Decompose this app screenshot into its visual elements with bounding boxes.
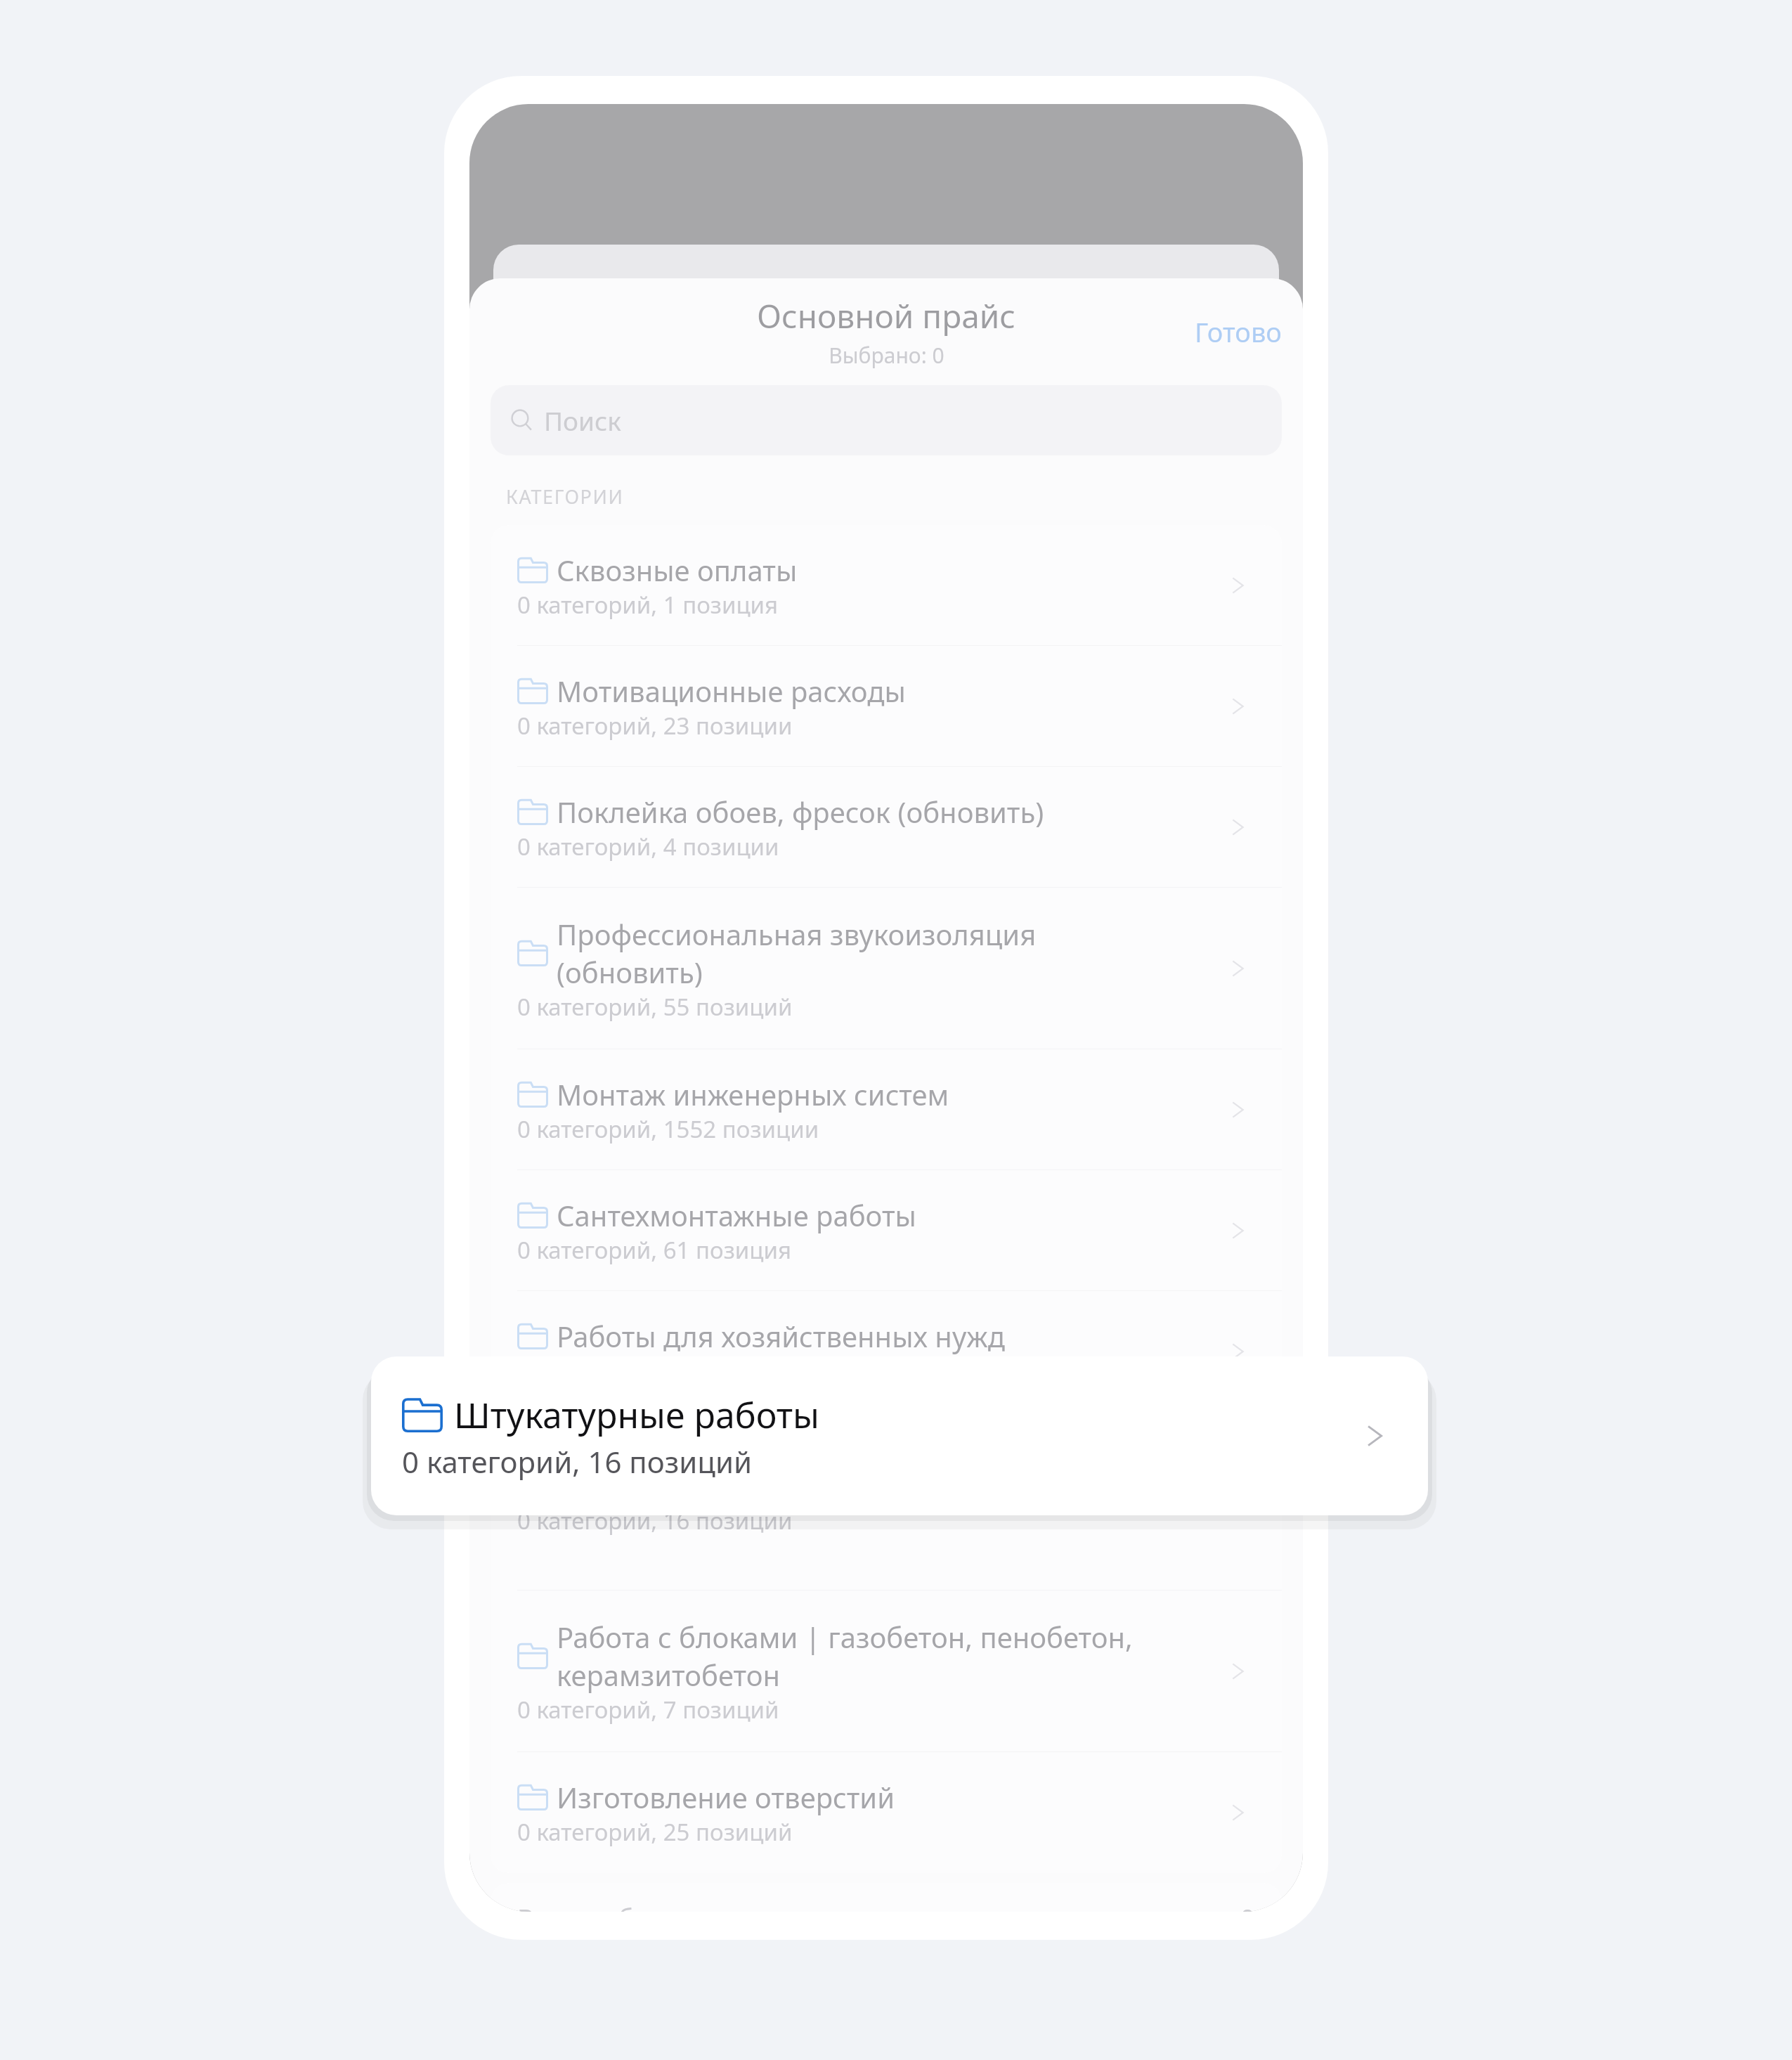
- button[interactable]: Мотивационные расходы: [491, 646, 1282, 767]
- staticText: 0 категорий, 7 позиций: [517, 1694, 779, 1725]
- button[interactable]: Search: [491, 385, 1282, 455]
- staticText: Работа с блоками | газобетон, пенобетон,: [557, 1618, 1133, 1656]
- button[interactable]: Готово: [1186, 306, 1290, 357]
- staticText: Монтаж инженерных систем: [557, 1075, 949, 1113]
- staticText: Профессиональная звукоизоляция: [557, 915, 1037, 953]
- staticText: Изготовление отверстий: [557, 1778, 895, 1816]
- staticText: Основной прайс: [757, 294, 1015, 338]
- button[interactable]: Штукатурные работы: [491, 1412, 1282, 1591]
- staticText: 0 категорий, 23 позиции: [517, 710, 793, 741]
- staticText: 0 категорий, 16 позиций: [402, 1442, 753, 1482]
- button[interactable]: Работа с блоками | газобетон, пенобетон,: [491, 1591, 1282, 1752]
- staticText: 0 категорий, 55 позиций: [517, 991, 793, 1023]
- staticText: 0: [1240, 1901, 1255, 1912]
- staticText: Поиск: [544, 403, 621, 438]
- staticText: 0 категорий, 1552 позиции: [517, 1113, 819, 1145]
- staticText: Штукатурные работы: [454, 1391, 820, 1439]
- button[interactable]: Сквозные оплаты: [491, 525, 1282, 646]
- staticText: Сквозные оплаты: [557, 551, 798, 589]
- staticText: керамзитобетон: [557, 1656, 781, 1694]
- staticText: Работы для хозяйственных нужд: [557, 1317, 1005, 1355]
- staticText: 0 категорий, 61 позиция: [517, 1234, 791, 1266]
- staticText: Мотивационные расходы: [557, 672, 906, 710]
- staticText: КАТЕГОРИИ: [506, 484, 624, 510]
- staticText: 0 категорий, 1 позиция: [517, 589, 779, 621]
- staticText: 0 категорий, 16 позиций: [517, 1505, 793, 1536]
- button[interactable]: Изготовление отверстий: [491, 1752, 1282, 1873]
- button[interactable]: Профессиональная звукоизоляция: [491, 888, 1282, 1049]
- staticText: (обновить): [557, 953, 703, 991]
- button[interactable]: Сантехмонтажные работы: [491, 1170, 1282, 1291]
- staticText: Сантехмонтажные работы: [557, 1196, 916, 1234]
- button[interactable]: Поклейка обоев, фресок (обновить): [491, 767, 1282, 888]
- button[interactable]: Работы для хозяйственных нужд: [491, 1291, 1282, 1412]
- staticText: 0 категорий, 4 позиции: [517, 831, 779, 862]
- button[interactable]: Штукатурные работы: [371, 1356, 1428, 1515]
- staticText: Всего себестоимость: [517, 1901, 1240, 1912]
- staticText: Штукатурные работы: [557, 1467, 850, 1505]
- staticText: Поклейка обоев, фресок (обновить): [557, 793, 1044, 831]
- staticText: Готово: [1195, 313, 1282, 350]
- button[interactable]: Монтаж инженерных систем: [491, 1049, 1282, 1170]
- staticText: Выбрано: 0: [829, 341, 944, 370]
- staticText: 0 категорий, 25 позиций: [517, 1816, 793, 1848]
